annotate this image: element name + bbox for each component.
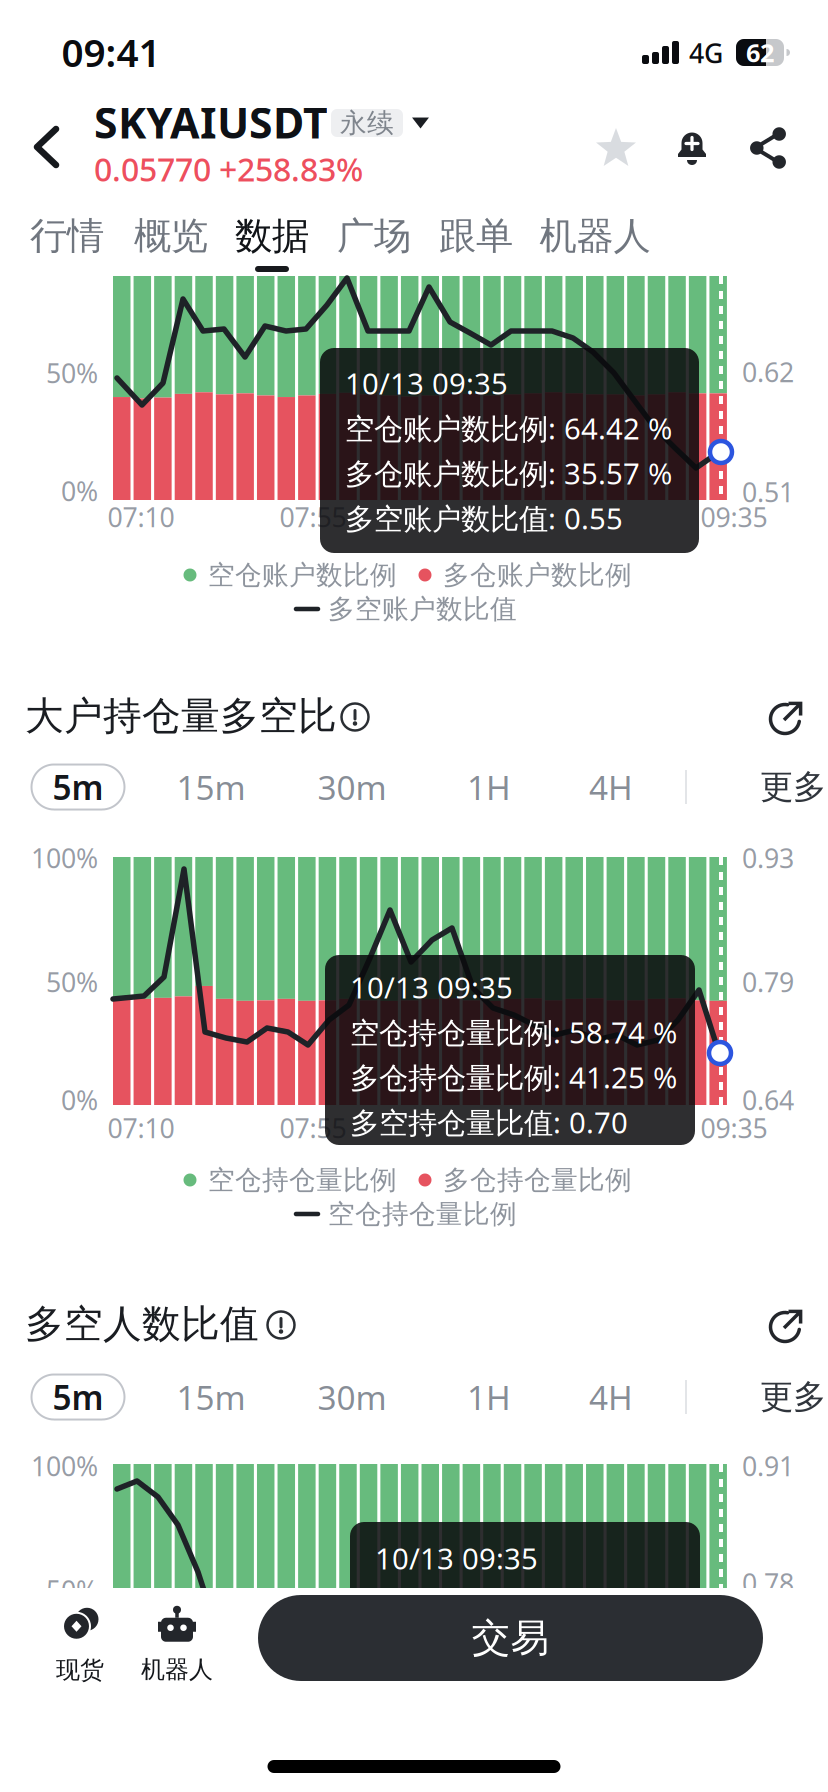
button[interactable]: 说明: [341, 703, 368, 730]
staticText: 5m: [52, 765, 103, 809]
staticText: 100%: [31, 840, 98, 876]
staticText: 0.51: [742, 474, 794, 510]
staticText: 多仓账户数比例: 35.57 %: [345, 453, 672, 492]
button[interactable]: 5m: [31, 764, 124, 809]
staticText: 空仓账户数比例: 64.42 %: [345, 408, 672, 447]
staticText: 多仓持仓量比例: [443, 1164, 632, 1196]
staticText: 交易: [471, 1614, 549, 1662]
staticText: 30m: [317, 765, 386, 809]
staticText: 10/13 09:35: [345, 363, 508, 402]
button[interactable]: 永续: [331, 109, 429, 137]
button[interactable]: 30m: [317, 765, 386, 809]
staticText: 大户持仓量多空比: [25, 692, 337, 740]
staticText: 0.64: [742, 1082, 794, 1118]
staticText: 09:41: [61, 26, 160, 78]
staticText: 0.91: [742, 1448, 794, 1484]
button[interactable]: 现货: [56, 1607, 104, 1685]
staticText: 07:10: [107, 499, 174, 535]
staticText: 07:55: [279, 499, 346, 535]
staticText: 现货: [56, 1655, 104, 1685]
button[interactable]: 1H: [467, 765, 511, 809]
button[interactable]: 数据: [235, 213, 309, 259]
staticText: 50%: [46, 355, 98, 391]
staticText: 空仓账户数比例: [208, 559, 397, 591]
staticText: 0%: [61, 473, 98, 509]
staticText: 多空人数比值: [25, 1300, 259, 1348]
staticText: 4H: [589, 1375, 633, 1419]
button[interactable]: 15m: [176, 765, 245, 809]
staticText: 0.79: [742, 964, 794, 1000]
staticText: 5m: [52, 1375, 103, 1419]
staticText: 广场: [337, 213, 411, 259]
staticText: 10/13 09:35: [375, 1538, 538, 1577]
button[interactable]: 1H: [467, 1375, 511, 1419]
staticText: 1H: [467, 1375, 511, 1419]
staticText: 0.93: [742, 840, 794, 876]
button[interactable]: 行情: [30, 213, 104, 259]
staticText: 空仓持仓量比例: 58.74 %: [350, 1012, 677, 1051]
button[interactable]: 分享: [770, 1308, 804, 1342]
staticText: 09:35: [700, 1110, 767, 1146]
button[interactable]: 4H: [589, 765, 633, 809]
button[interactable]: 更多: [760, 766, 826, 807]
staticText: 永续: [340, 107, 394, 139]
button[interactable]: 提醒: [677, 131, 707, 165]
staticText: 0.05770 +258.83%: [94, 148, 363, 190]
staticText: 4G: [689, 35, 723, 71]
staticText: 0.62: [742, 354, 794, 390]
staticText: 100%: [31, 1448, 98, 1484]
staticText: 概览: [134, 213, 208, 259]
staticText: 15m: [176, 765, 245, 809]
staticText: 更多: [760, 1376, 826, 1417]
staticText: 07:55: [279, 1110, 346, 1146]
button[interactable]: 交易: [258, 1595, 763, 1681]
staticText: 07:10: [107, 1110, 174, 1146]
staticText: 4H: [589, 765, 633, 809]
button[interactable]: 4H: [589, 1375, 633, 1419]
staticText: 30m: [317, 1375, 386, 1419]
button[interactable]: 机器人: [141, 1606, 213, 1684]
button[interactable]: 返回: [30, 125, 64, 169]
staticText: 行情: [30, 213, 104, 259]
button[interactable]: 15m: [176, 1375, 245, 1419]
staticText: 空仓持仓量比例: [328, 1198, 517, 1230]
staticText: 机器人: [141, 1655, 213, 1684]
staticText: 更多: [760, 766, 826, 807]
button[interactable]: 30m: [317, 1375, 386, 1419]
staticText: 多仓持仓量比例: 41.25 %: [350, 1057, 677, 1096]
staticText: 62: [746, 36, 774, 69]
button[interactable]: 分享: [750, 130, 786, 166]
staticText: 机器人: [539, 213, 650, 259]
staticText: 15m: [176, 1375, 245, 1419]
staticText: 多空账户数比值: [328, 593, 517, 625]
button[interactable]: 概览: [134, 213, 208, 259]
staticText: 数据: [235, 213, 309, 259]
button[interactable]: 收藏: [596, 128, 636, 170]
staticText: 0%: [61, 1082, 98, 1118]
button[interactable]: 广场: [337, 213, 411, 259]
staticText: 0.78: [742, 1565, 794, 1601]
button[interactable]: 5m: [31, 1374, 124, 1419]
button[interactable]: 说明: [267, 1311, 294, 1338]
button[interactable]: 更多: [760, 1376, 826, 1417]
staticText: 50%: [46, 964, 98, 1000]
staticText: 多空账户数比值: 0.55: [345, 498, 623, 537]
staticText: 10/13 09:35: [350, 967, 513, 1006]
staticText: 多空持仓量比值: 0.70: [350, 1102, 628, 1141]
staticText: 跟单: [439, 213, 513, 259]
staticText: 空仓持仓量比例: [208, 1164, 397, 1196]
staticText: 50%: [46, 1572, 98, 1608]
staticText: 09:35: [700, 499, 767, 535]
button[interactable]: 机器人: [539, 213, 650, 259]
staticText: 多仓账户数比例: [443, 559, 632, 591]
button[interactable]: 分享: [770, 700, 804, 734]
button[interactable]: 跟单: [439, 213, 513, 259]
staticText: 1H: [467, 765, 511, 809]
staticText: SKYAIUSDT: [94, 94, 328, 150]
